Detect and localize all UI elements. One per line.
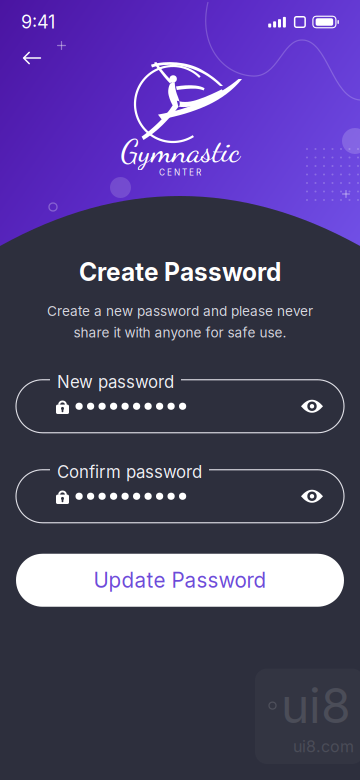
staticText: Update Password — [93, 568, 266, 593]
button[interactable]: Update Password — [16, 554, 344, 607]
staticText: ui8.com — [293, 737, 354, 756]
staticText: Create Password — [79, 257, 281, 287]
staticText: ui8 — [281, 677, 351, 735]
button[interactable]: Show New password — [297, 395, 327, 418]
staticText: Create a new password and please never — [47, 303, 313, 319]
staticText: Gymnastic — [120, 132, 239, 170]
staticText: share it with anyone for safe use. — [73, 324, 286, 341]
button[interactable]: Show Confirm password — [297, 485, 327, 508]
staticText: 9:41 — [21, 11, 55, 33]
staticText: C E N T E R — [159, 167, 201, 177]
staticText: Confirm password — [57, 462, 202, 482]
button[interactable]: Back — [18, 44, 52, 72]
staticText: New password — [57, 372, 174, 392]
